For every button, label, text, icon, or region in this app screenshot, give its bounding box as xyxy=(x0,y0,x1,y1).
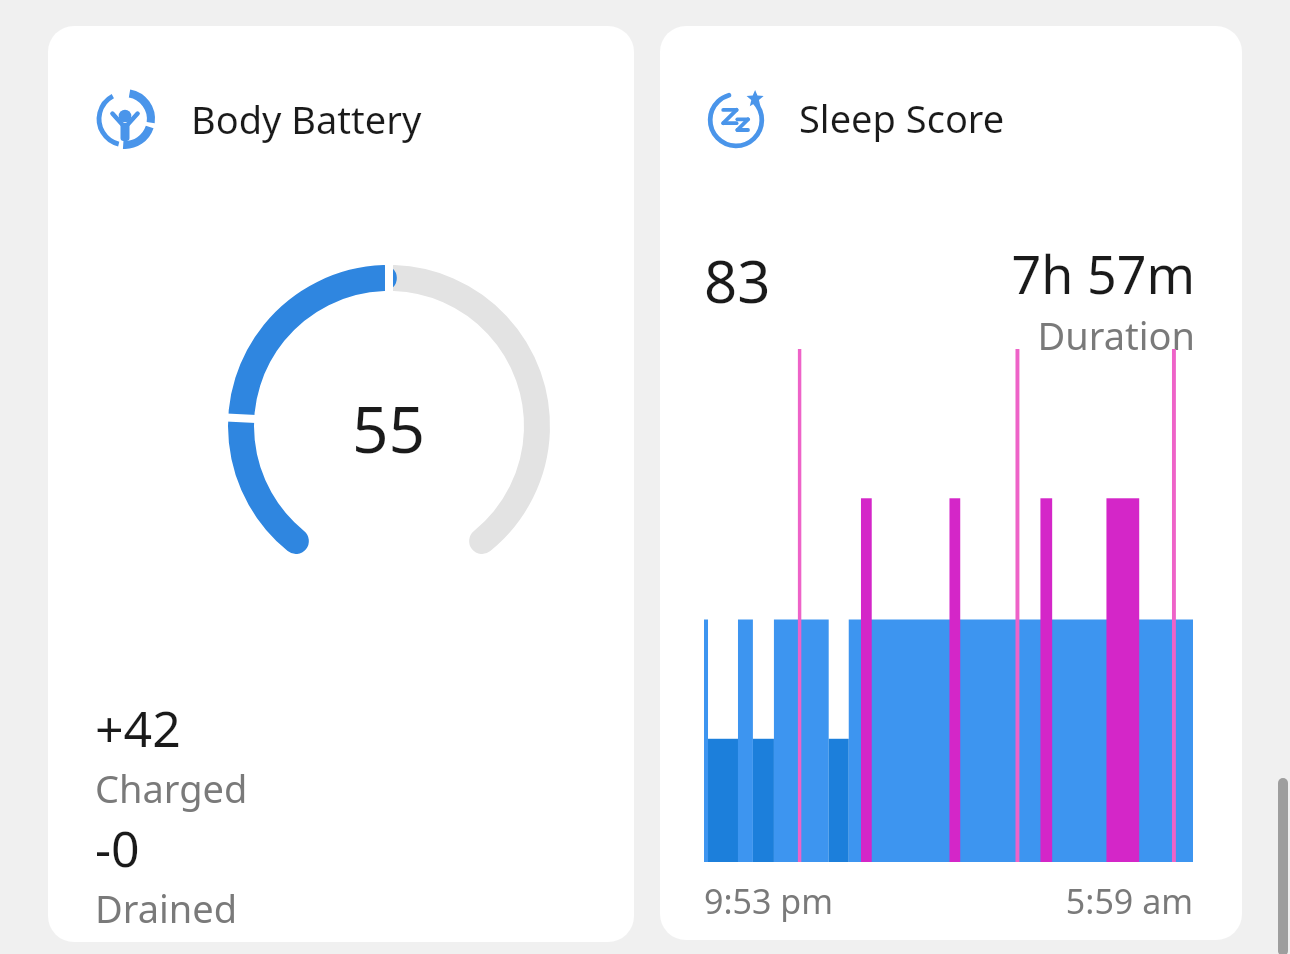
staticText: 7h 57m xyxy=(1011,238,1195,309)
other: Sleep Score xyxy=(707,89,765,147)
button[interactable]: Body Battery xyxy=(48,26,634,942)
button[interactable]: Sleep Score xyxy=(660,26,1242,940)
staticText: Sleep Score xyxy=(799,92,1005,144)
staticText: Body Battery xyxy=(191,93,422,145)
staticText: +42 xyxy=(95,694,181,762)
staticText: 5:59 am xyxy=(1009,878,1193,924)
staticText: 55 xyxy=(352,385,426,472)
staticText: 9:53 pm xyxy=(704,878,833,924)
other: Body Battery xyxy=(95,89,155,149)
staticText: Drained xyxy=(95,882,238,934)
staticText: Duration xyxy=(1037,309,1195,361)
staticText: 83 xyxy=(704,241,771,320)
staticText: Charged xyxy=(95,762,248,814)
staticText: -0 xyxy=(95,814,140,882)
